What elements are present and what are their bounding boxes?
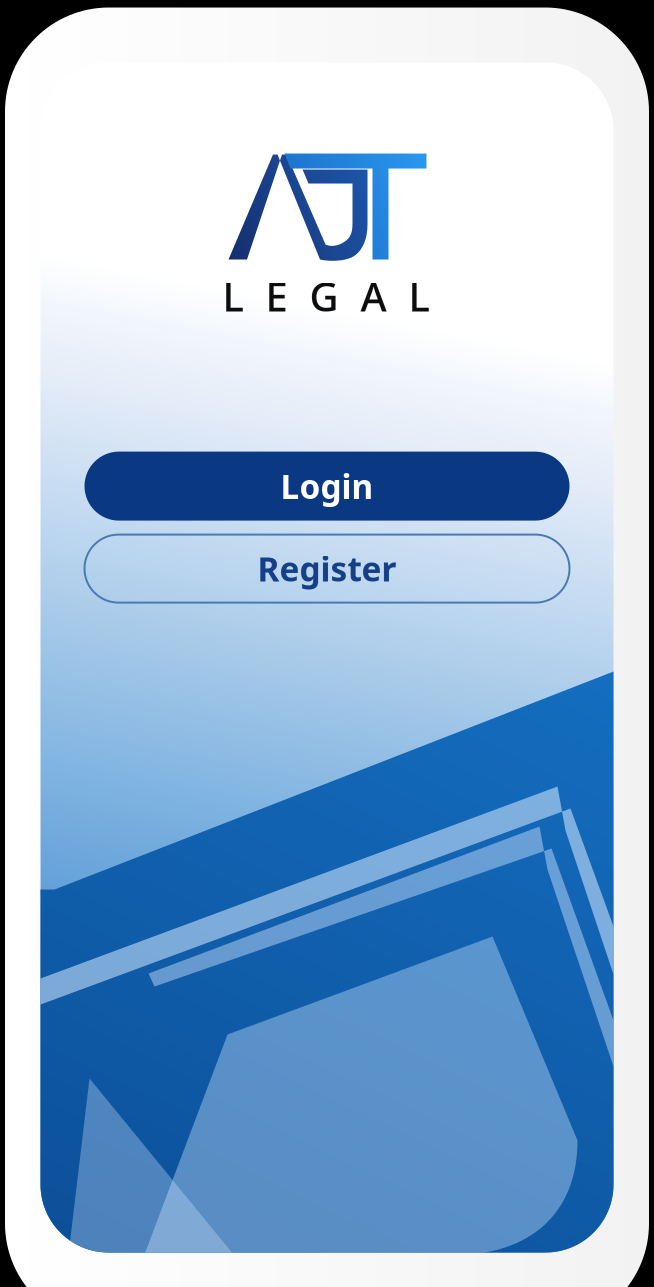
staticText: Login bbox=[280, 464, 373, 508]
button[interactable]: Login bbox=[84, 452, 569, 521]
staticText: LEGAL bbox=[222, 269, 429, 323]
staticText: Register bbox=[257, 546, 396, 591]
button[interactable]: Register bbox=[84, 535, 569, 603]
